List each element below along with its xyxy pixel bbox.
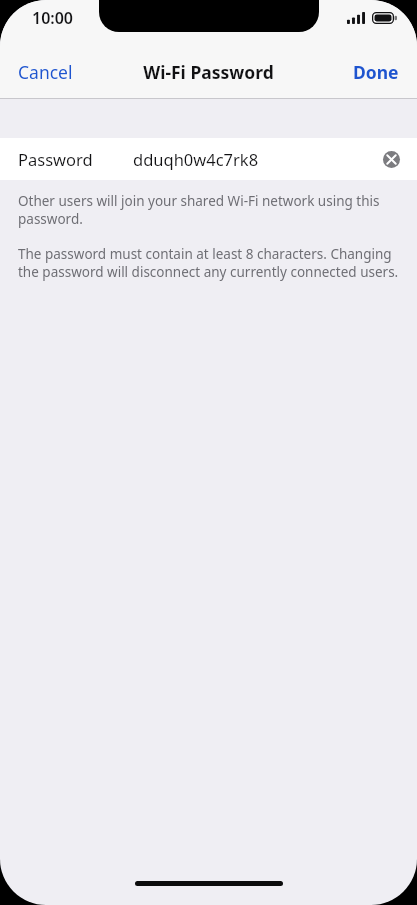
button[interactable]: Clear text <box>376 144 406 174</box>
staticText: Cancel <box>18 60 73 84</box>
staticText: 10:00 <box>32 7 74 29</box>
staticText: Wi-Fi Password <box>143 60 274 84</box>
staticText: Done <box>353 60 399 84</box>
button[interactable]: Password <box>0 138 417 180</box>
staticText: dduqh0w4c7rk8 <box>133 148 259 170</box>
staticText: Other users will join your shared Wi-Fi … <box>18 192 399 228</box>
button[interactable]: Done <box>335 50 417 94</box>
staticText: The password must contain at least 8 cha… <box>18 245 399 281</box>
button[interactable]: Cancel <box>0 50 91 94</box>
staticText: Password <box>18 148 93 170</box>
